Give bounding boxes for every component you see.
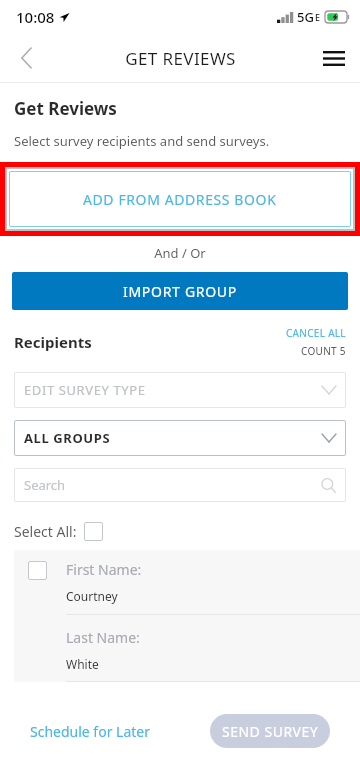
button[interactable]: ALL GROUPS [14,420,346,456]
staticText: GET REVIEWS [125,47,236,70]
button[interactable]: ADD FROM ADDRESS BOOK [9,171,351,227]
staticText: Search [24,476,66,494]
button[interactable]: EDIT SURVEY TYPE [14,372,346,408]
staticText: SEND SURVEY [222,722,319,741]
button[interactable]: Menu [308,34,360,82]
staticText: Recipients [14,332,92,352]
staticText: ALL GROUPS [24,429,111,447]
staticText: Courtney [66,588,118,604]
staticText: 5G [297,8,314,26]
button[interactable]: IMPORT GROUP [12,272,348,310]
staticText: 10:08 [16,7,55,27]
staticText: Select All: [14,522,77,541]
staticText: ADD FROM ADDRESS BOOK [83,190,277,209]
staticText: CANCEL ALL [286,326,346,340]
button[interactable]: SEND SURVEY [210,714,330,748]
staticText: EDIT SURVEY TYPE [24,381,146,399]
button[interactable]: Search [14,468,346,502]
staticText: First Name: [66,560,142,579]
staticText: COUNT 5 [301,344,346,358]
button[interactable]: Select Courtney White [14,550,360,682]
button[interactable]: Back [0,34,52,82]
staticText: Schedule for Later [30,722,150,741]
staticText: Get Reviews [14,97,117,120]
staticText: And / Or [0,244,360,262]
button[interactable]: CANCEL ALL [286,326,346,340]
staticText: IMPORT GROUP [123,282,237,301]
button[interactable]: Schedule for Later [0,700,180,762]
staticText: Last Name: [66,628,140,647]
staticText: White [66,656,99,672]
button[interactable]: Select Courtney White [28,561,47,580]
staticText: Select survey recipients and send survey… [14,132,270,150]
staticText: E [315,11,321,23]
button[interactable]: Select All: [14,522,103,541]
